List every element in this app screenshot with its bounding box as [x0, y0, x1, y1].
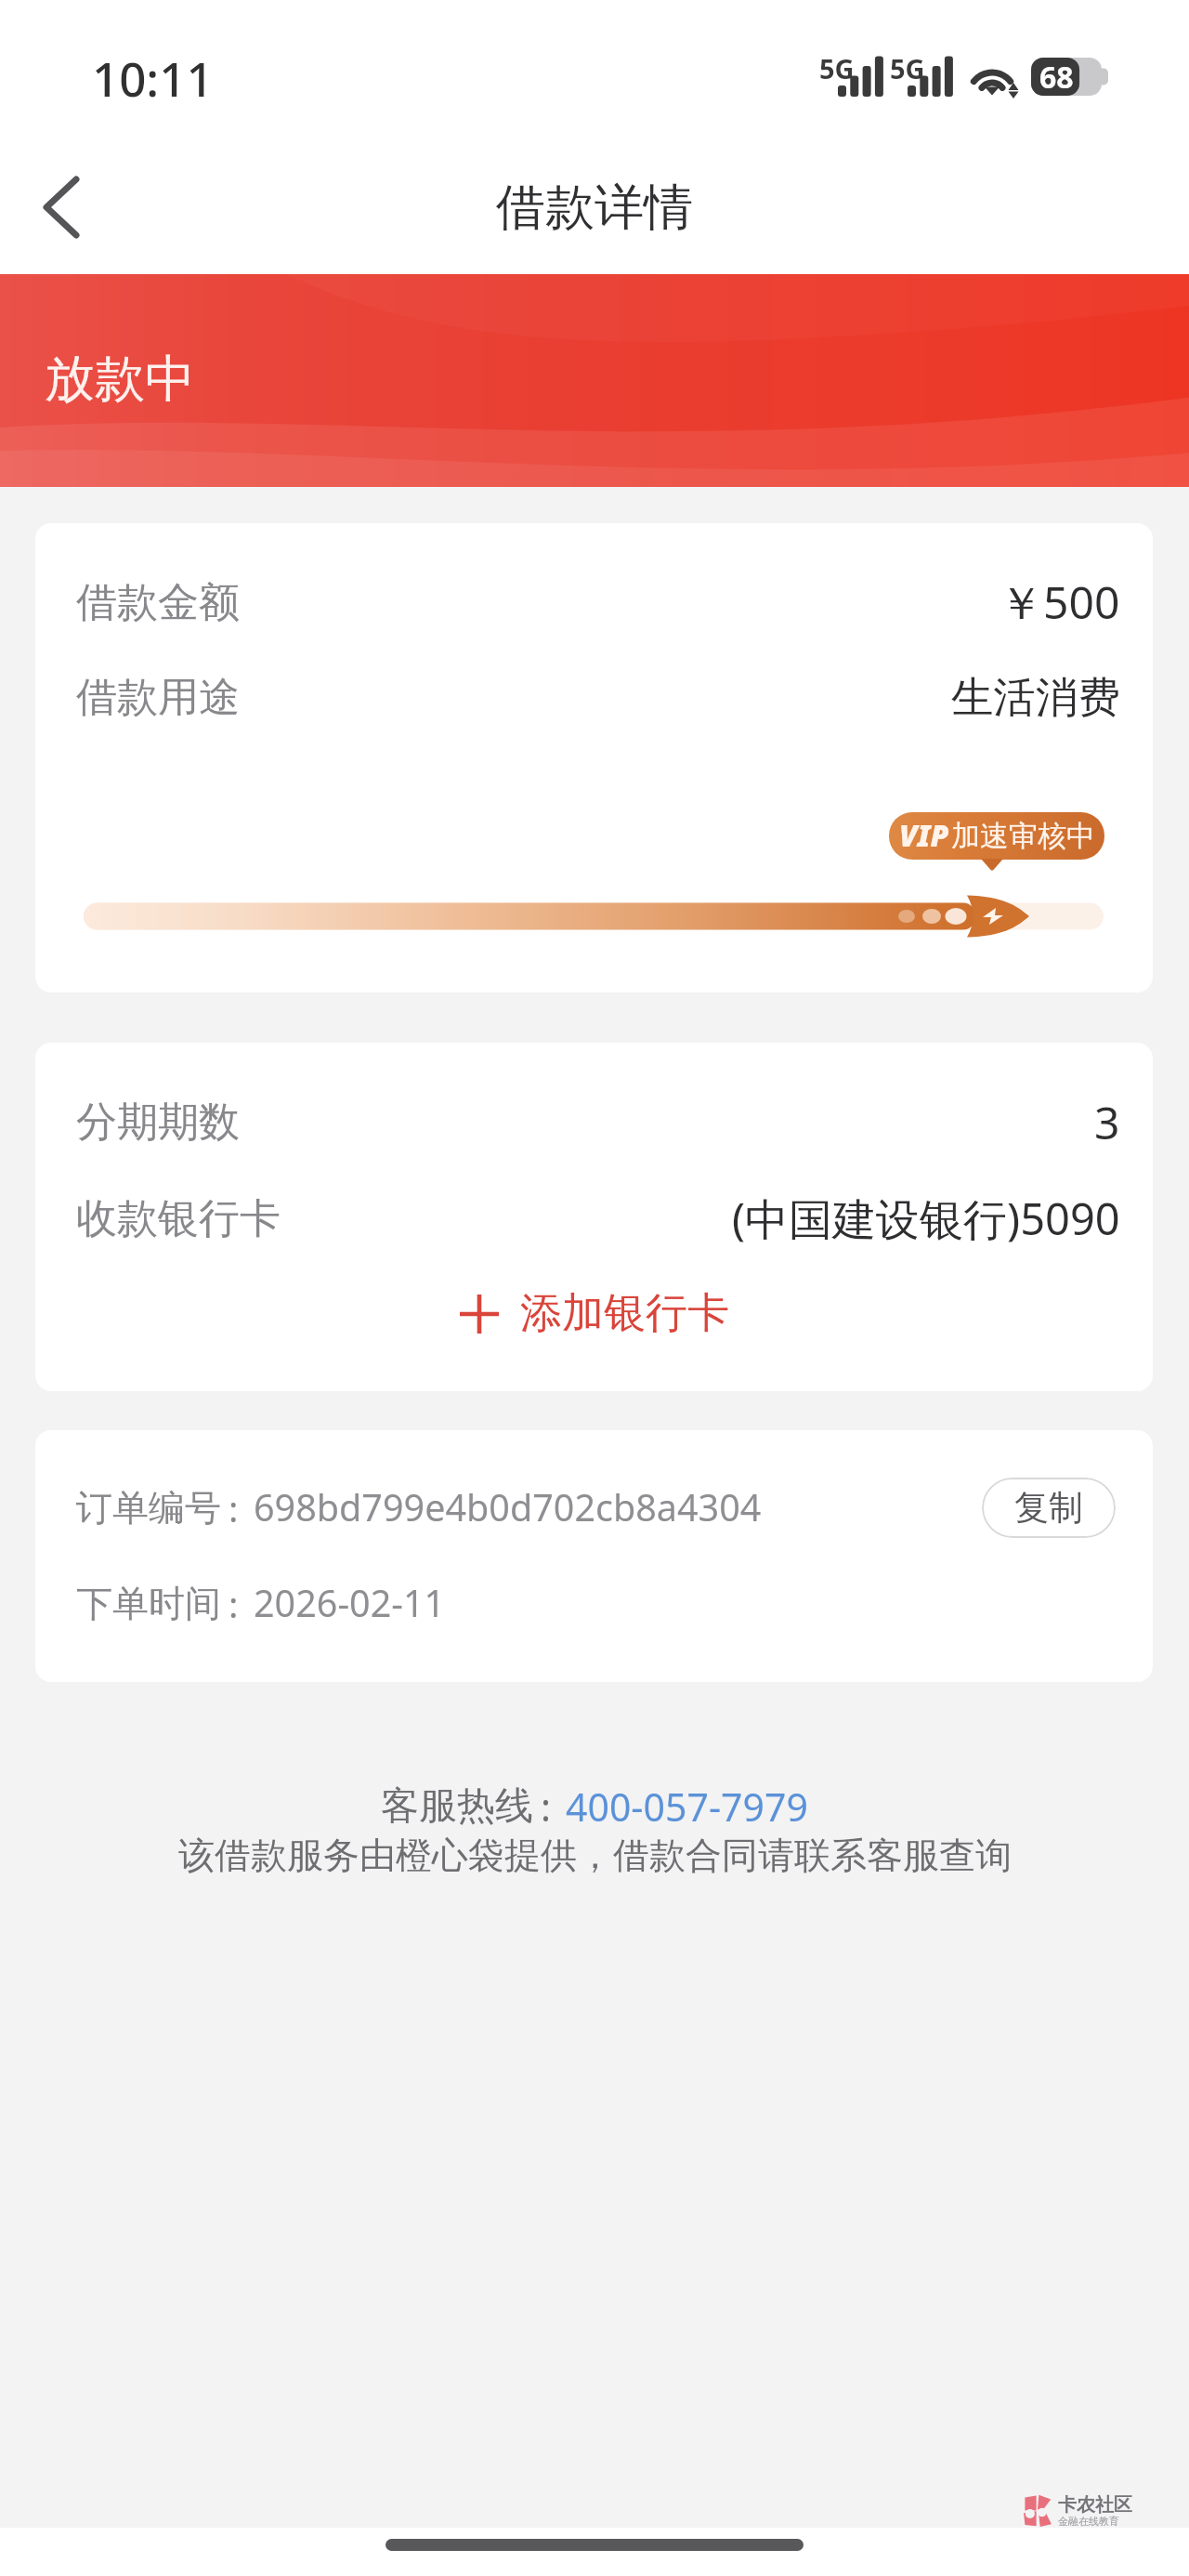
staticText: 借款金额 [76, 577, 240, 628]
staticText: 订单编号 [76, 1485, 221, 1531]
button[interactable]: Back [0, 135, 111, 274]
staticText: 放款中 [45, 348, 195, 411]
staticText: 分期期数 [76, 1097, 240, 1148]
staticText: ￥500 [999, 572, 1120, 633]
staticText: (中国建设银行)5090 [732, 1189, 1120, 1248]
staticText: : [229, 1483, 239, 1532]
staticText: 收款银行卡 [76, 1193, 281, 1244]
staticText: 698bd799e4b0d702cb8a4304 [254, 1482, 762, 1532]
staticText: 该借款服务由橙心袋提供，借款合同请联系客服查询 [178, 1833, 1012, 1878]
button[interactable]: 400-057-7979 [566, 1781, 808, 1833]
staticText: 客服热线 [381, 1782, 533, 1831]
staticText: 3 [1094, 1092, 1120, 1152]
staticText: 添加银行卡 [520, 1287, 729, 1340]
button[interactable]: 添加银行卡 [438, 1280, 751, 1347]
button[interactable]: 复制 [982, 1478, 1116, 1538]
staticText: 5G [819, 50, 855, 86]
staticText: 68 [1039, 57, 1074, 95]
staticText: 金融在线教育 [1058, 2515, 1119, 2528]
staticText: 加速审核中 [951, 818, 1095, 854]
staticText: 10:11 [92, 46, 214, 110]
staticText: : [541, 1781, 551, 1833]
staticText: 卡农社区 [1058, 2493, 1132, 2517]
staticText: 5G [890, 50, 925, 86]
staticText: 借款用途 [76, 672, 240, 723]
staticText: : [229, 1579, 239, 1628]
staticText: 借款详情 [496, 177, 693, 239]
staticText: 复制 [1014, 1486, 1083, 1530]
staticText: VIP [899, 815, 949, 856]
staticText: 下单时间 [76, 1581, 221, 1626]
staticText: 生活消费 [951, 671, 1120, 724]
staticText: 2026-02-11 [254, 1578, 446, 1628]
